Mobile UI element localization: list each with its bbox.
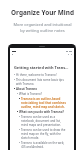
staticText: What can you do with Transno? (19, 110, 64, 114)
staticText: Transno is an outline-based note-taking … (21, 97, 68, 109)
staticText: Getting started with Trans... (14, 65, 69, 70)
staticText: About Transno (16, 87, 38, 91)
staticText: Transno can be used as a notebook, docum… (21, 115, 68, 127)
staticText: Transno is available on the web, iOS and… (21, 141, 68, 149)
staticText: This document lists some basic tips with… (16, 78, 68, 86)
staticText: Transno can be used to draw the mind map… (21, 128, 68, 140)
staticText: What is Transno? (19, 92, 42, 96)
staticText: Hi there, welcome to Transno! (16, 73, 57, 77)
staticText: More organized and intuitional by writin… (13, 22, 72, 34)
staticText: Organize Your Mind (11, 8, 74, 17)
